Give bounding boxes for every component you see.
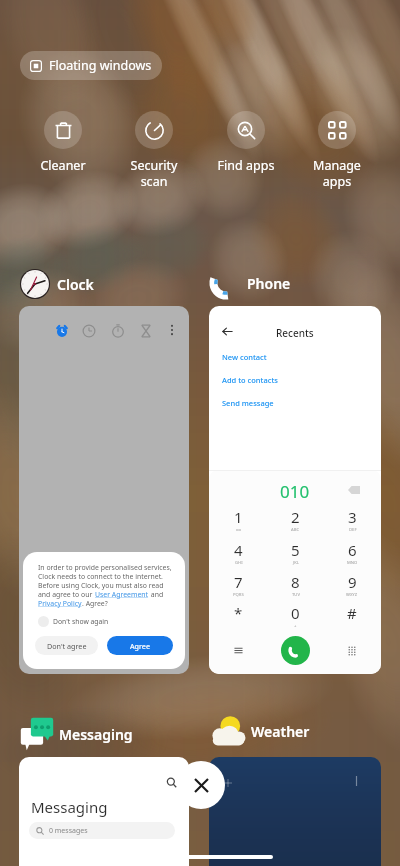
staticText: Privacy Policy [38, 599, 82, 608]
staticText: DEF [349, 527, 357, 533]
button[interactable]: # [326, 603, 378, 633]
button[interactable]: Don't agree [35, 636, 98, 655]
button[interactable]: Alarm [19, 306, 189, 674]
button[interactable]: Menu [234, 646, 243, 655]
staticText: Add to contacts [222, 375, 278, 385]
button[interactable]: 8 [269, 572, 321, 602]
button[interactable]: Cleaner [19, 111, 107, 174]
button[interactable]: 0 messages [29, 822, 175, 839]
staticText: 8 [291, 572, 300, 592]
staticText: Clock [57, 275, 94, 294]
staticText: 010 [280, 480, 310, 503]
staticText: 7 [234, 572, 243, 592]
staticText: Messaging [59, 725, 133, 744]
staticText: 1 [234, 507, 243, 527]
staticText: ABC [291, 527, 300, 533]
staticText: 5 [291, 540, 300, 560]
button[interactable]: More options [166, 324, 178, 336]
button[interactable]: 2 [269, 507, 321, 537]
staticText: Messaging [31, 797, 108, 817]
staticText: Clock needs to connect to the internet. [38, 572, 163, 581]
staticText: Manage apps [293, 157, 381, 189]
button[interactable]: Agree [107, 636, 173, 655]
button[interactable]: 5 [269, 540, 321, 570]
staticText: Floating windows [49, 57, 152, 74]
button[interactable]: 1 [212, 507, 264, 537]
staticText: WXYZ [346, 592, 358, 598]
button[interactable]: * [212, 603, 264, 633]
staticText: 0 messages [49, 826, 88, 836]
staticText: 9 [348, 572, 357, 592]
button[interactable]: Timer [139, 324, 153, 338]
staticText: 4 [234, 540, 243, 560]
staticText: # [347, 603, 357, 623]
staticText: Recents [276, 326, 314, 340]
button[interactable]: Send message [222, 398, 274, 408]
staticText: 3 [348, 507, 357, 527]
staticText: Don't show again [53, 617, 109, 626]
staticText: User Agreement [95, 590, 149, 599]
button[interactable]: 3 [326, 507, 378, 537]
staticText: New contact [222, 352, 267, 362]
staticText: Agree [130, 641, 150, 651]
staticText: . Agree? [82, 599, 108, 608]
staticText: Weather [251, 722, 310, 741]
button[interactable]: Search [166, 777, 177, 788]
button[interactable]: Delete [348, 486, 360, 494]
staticText: MNO [347, 560, 358, 566]
staticText: GHI [235, 560, 243, 566]
staticText: Before using Clock, you must also read [38, 581, 164, 590]
staticText: and agree to our [38, 590, 95, 599]
button[interactable] [209, 757, 381, 866]
staticText: 6 [348, 540, 357, 560]
button[interactable]: Keypad [348, 646, 356, 656]
button[interactable]: Floating windows [20, 51, 162, 80]
button[interactable]: Manage apps [293, 111, 381, 189]
staticText: Phone [247, 274, 291, 293]
button[interactable]: Call [281, 636, 310, 665]
staticText: PQRS [233, 592, 244, 598]
button[interactable]: Close all [177, 761, 225, 809]
button[interactable]: New contact [222, 352, 267, 362]
button[interactable]: 0 [269, 603, 321, 633]
staticText: Don't agree [47, 641, 87, 651]
staticText: 0 [291, 603, 300, 623]
staticText: Cleaner [19, 157, 107, 174]
staticText: * [234, 603, 243, 623]
staticText: Send message [222, 398, 274, 408]
button[interactable]: 7 [212, 572, 264, 602]
staticText: TUV [292, 592, 300, 598]
button[interactable]: Stopwatch [111, 324, 125, 338]
button[interactable]: Search [19, 757, 189, 866]
staticText: oo [236, 527, 242, 533]
button[interactable]: Security scan [110, 111, 198, 189]
button[interactable]: Add to contacts [222, 375, 278, 385]
button[interactable]: Back [209, 306, 381, 674]
button[interactable]: Back [222, 326, 233, 337]
staticText: and [149, 590, 164, 599]
button[interactable]: 9 [326, 572, 378, 602]
button[interactable]: 6 [326, 540, 378, 570]
staticText: 2 [291, 507, 300, 527]
staticText: Find apps [202, 157, 290, 174]
button[interactable]: Find apps [202, 111, 290, 174]
staticText: + [294, 623, 297, 629]
button[interactable]: Clock [82, 324, 96, 338]
button[interactable]: Alarm [55, 324, 69, 338]
staticText: JKL [293, 560, 299, 566]
button[interactable]: 4 [212, 540, 264, 570]
staticText: Security scan [110, 157, 198, 189]
staticText: In order to provide personalised service… [38, 563, 172, 572]
button[interactable]: Don't show again [38, 616, 109, 627]
